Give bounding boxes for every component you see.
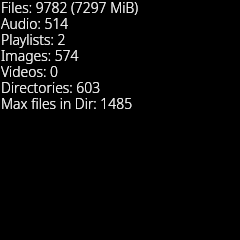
button[interactable]: Videos: 0 xyxy=(0,62,240,78)
staticText: Audio: 514 xyxy=(1,14,69,33)
button[interactable]: Directories: 603 xyxy=(0,78,240,94)
staticText: Max files in Dir: 1485 xyxy=(1,94,133,113)
button[interactable]: Images: 574 xyxy=(0,46,240,62)
button[interactable]: Playlists: 2 xyxy=(0,30,240,46)
button[interactable]: Audio: 514 xyxy=(0,14,240,30)
staticText: Images: 574 xyxy=(1,46,79,65)
staticText: Playlists: 2 xyxy=(1,30,66,49)
staticText: Files: 9782 (7297 MiB) xyxy=(1,0,139,17)
button[interactable]: Files: 9782 (7297 MiB) xyxy=(0,0,240,14)
staticText: Videos: 0 xyxy=(1,62,58,81)
staticText: Directories: 603 xyxy=(1,78,101,97)
button[interactable]: Max files in Dir: 1485 xyxy=(0,94,240,110)
